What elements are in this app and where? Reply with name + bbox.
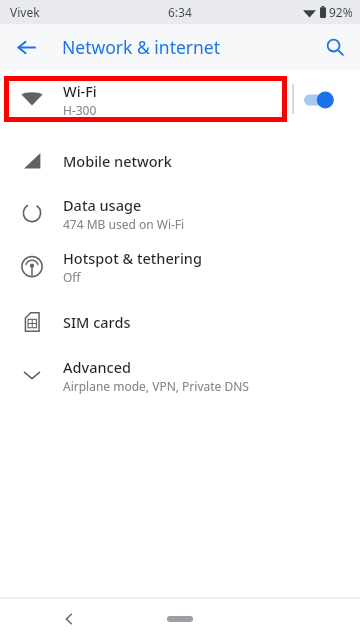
staticText: Vivek bbox=[10, 4, 40, 20]
button[interactable]: Home bbox=[152, 607, 208, 631]
staticText: Wi-Fi bbox=[63, 81, 97, 101]
staticText: Off bbox=[63, 269, 81, 285]
button[interactable]: Wi-Fi bbox=[0, 76, 360, 122]
staticText: H-300 bbox=[63, 102, 97, 118]
staticText: 6:34 bbox=[168, 4, 192, 20]
staticText: SIM cards bbox=[63, 312, 131, 332]
button[interactable]: Back bbox=[9, 30, 43, 64]
button[interactable]: SIM cards bbox=[0, 294, 360, 349]
button[interactable]: Search bbox=[317, 29, 353, 65]
staticText: Data usage bbox=[63, 195, 142, 215]
staticText: 92% bbox=[329, 4, 353, 20]
staticText: 474 MB used on Wi-Fi bbox=[63, 216, 185, 232]
button[interactable]: Hotspot & tethering bbox=[0, 239, 360, 294]
staticText: Mobile network bbox=[63, 151, 172, 171]
button[interactable]: Data usage bbox=[0, 187, 360, 239]
button[interactable]: Advanced bbox=[0, 349, 360, 401]
button[interactable]: Mobile network bbox=[0, 135, 360, 187]
staticText: Hotspot & tethering bbox=[63, 248, 202, 268]
button[interactable]: Back bbox=[54, 604, 84, 634]
staticText: Advanced bbox=[63, 357, 131, 377]
staticText: Airplane mode, VPN, Private DNS bbox=[63, 378, 249, 394]
button[interactable]: Wi-Fi toggle bbox=[303, 89, 347, 111]
staticText: Network & internet bbox=[62, 35, 221, 59]
